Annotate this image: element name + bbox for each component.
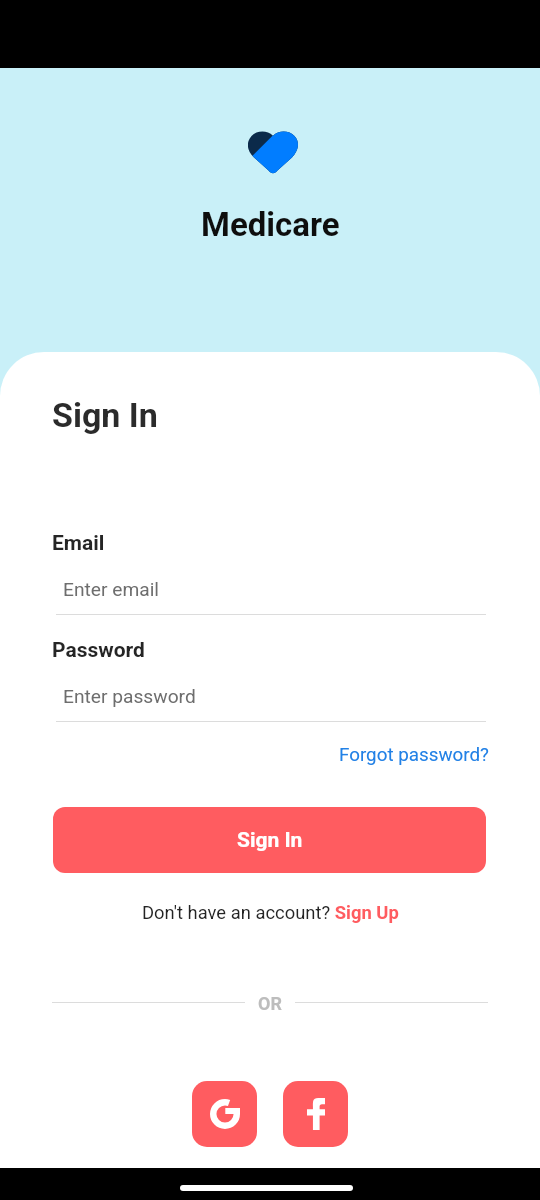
staticText: Forgot password? [339, 744, 489, 766]
staticText: Sign In [52, 395, 158, 435]
button[interactable]: Enter password [56, 685, 486, 723]
button[interactable]: Sign In [53, 807, 486, 873]
staticText: Email [52, 531, 105, 556]
staticText: Medicare [201, 205, 340, 244]
staticText: OR [258, 993, 282, 1014]
button[interactable]: Forgot password? [337, 741, 491, 769]
staticText: Sign In [237, 828, 303, 853]
staticText: Enter password [63, 685, 196, 708]
staticText: Password [52, 638, 145, 663]
staticText: Don't have an account? Sign Up [142, 902, 399, 924]
button[interactable]: Sign in with Facebook [283, 1081, 348, 1147]
button[interactable]: Don't have an account? Sign Up [140, 899, 401, 927]
button[interactable]: Sign in with Google [192, 1081, 257, 1147]
staticText: Enter email [63, 578, 159, 601]
button[interactable]: Enter email [56, 578, 486, 616]
